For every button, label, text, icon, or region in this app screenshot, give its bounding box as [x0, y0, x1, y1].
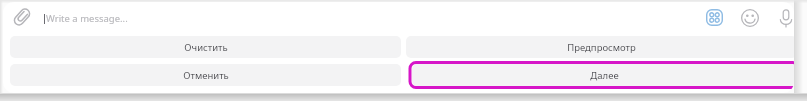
button[interactable]: Voice message	[772, 4, 794, 32]
button[interactable]: Attach file	[8, 3, 36, 31]
button[interactable]: Очистить	[10, 36, 401, 58]
staticText: Далее	[590, 69, 619, 82]
staticText: Предпросмотр	[567, 41, 636, 54]
staticText: Отменить	[183, 69, 229, 82]
button[interactable]: Предпросмотр	[406, 36, 794, 58]
staticText: Write a message...	[46, 12, 128, 25]
button[interactable]: Emoji	[736, 4, 764, 32]
button[interactable]: Далее	[412, 64, 794, 86]
staticText: Очистить	[184, 41, 228, 54]
button[interactable]: Apps	[700, 3, 728, 31]
button[interactable]: Отменить	[10, 64, 401, 86]
